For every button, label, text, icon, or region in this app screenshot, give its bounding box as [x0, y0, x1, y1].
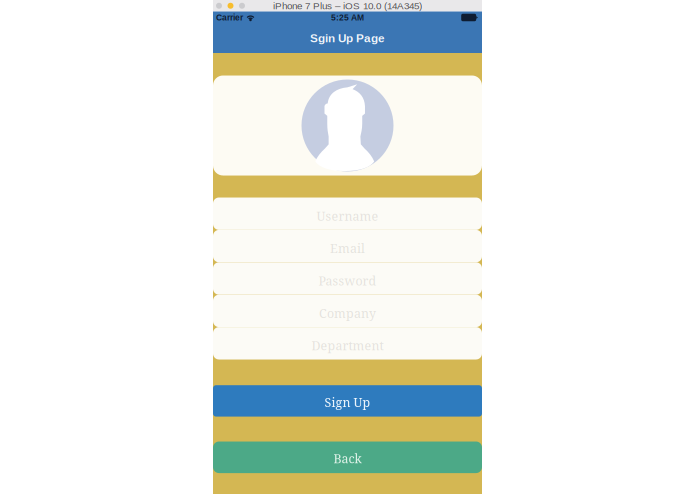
button[interactable]: Department	[213, 327, 482, 359]
staticText: iPhone 7 Plus – iOS 10.0 (14A345)	[273, 0, 422, 11]
staticText: Sgin Up Page	[310, 32, 385, 45]
staticText: Carrier	[216, 13, 243, 22]
staticText: Back	[333, 450, 361, 467]
staticText: Department	[311, 337, 383, 354]
staticText: Username	[316, 207, 378, 224]
staticText: Password	[318, 272, 376, 289]
button[interactable]: Back	[213, 441, 482, 473]
staticText: Email	[330, 240, 365, 257]
button[interactable]: Company	[213, 295, 482, 327]
button[interactable]: Password	[213, 262, 482, 295]
staticText: 5:25 AM	[331, 13, 364, 22]
button[interactable]: Username	[213, 197, 482, 230]
staticText: Sign Up	[324, 394, 370, 411]
staticText: Company	[319, 305, 376, 322]
button[interactable]: Sign Up	[213, 385, 482, 417]
button[interactable]: Email	[213, 230, 482, 262]
